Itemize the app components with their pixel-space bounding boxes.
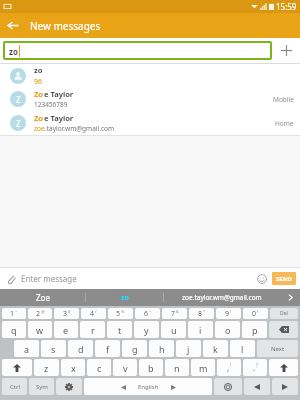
button[interactable]: 3: [54, 308, 79, 319]
button[interactable]: t: [107, 321, 132, 338]
button[interactable]: z: [34, 359, 59, 376]
button[interactable]: Back: [0, 13, 25, 38]
button[interactable]: Ctrl: [2, 378, 27, 395]
staticText: ,: [227, 362, 230, 373]
button[interactable]: 9: [216, 308, 241, 319]
button[interactable]: m: [191, 359, 215, 376]
staticText: Next: [271, 345, 285, 353]
button[interactable]: i: [188, 321, 213, 338]
button[interactable]: SEND: [272, 272, 296, 285]
button[interactable]: g: [122, 340, 147, 357]
staticText: %: [121, 309, 125, 314]
button[interactable]: o: [215, 321, 240, 338]
staticText: 8: [198, 309, 203, 319]
button[interactable]: n: [165, 359, 189, 376]
button[interactable]: Settings: [56, 378, 82, 395]
button[interactable]: f: [95, 340, 120, 357]
staticText: ^: [149, 309, 152, 314]
button[interactable]: Add recipient: [272, 38, 300, 63]
staticText: u: [171, 324, 177, 336]
button[interactable]: Shift: [269, 359, 298, 376]
button[interactable]: e: [54, 321, 78, 338]
button[interactable]: English: [84, 378, 212, 395]
staticText: 15:59: [276, 1, 297, 12]
button[interactable]: Sym: [29, 378, 54, 395]
button[interactable]: h: [149, 340, 174, 357]
button[interactable]: q: [2, 321, 26, 338]
button[interactable]: y: [134, 321, 159, 338]
staticText: ~: [15, 309, 18, 314]
button[interactable]: x: [61, 359, 85, 376]
button[interactable]: 7: [162, 308, 187, 319]
button[interactable]: Z: [0, 87, 300, 111]
button[interactable]: a: [14, 340, 39, 357]
button[interactable]: Left: [244, 378, 270, 395]
staticText: 2: [36, 309, 41, 319]
staticText: i: [199, 324, 202, 336]
staticText: .: [253, 362, 256, 373]
button[interactable]: r: [80, 321, 105, 338]
button[interactable]: k: [203, 340, 228, 357]
button[interactable]: u: [161, 321, 186, 338]
button[interactable]: 8: [189, 308, 214, 319]
button[interactable]: Z: [0, 111, 300, 135]
staticText: 4: [90, 309, 95, 319]
button[interactable]: w: [28, 321, 52, 338]
staticText: o: [225, 324, 231, 336]
staticText: p: [252, 324, 258, 336]
button[interactable]: 2: [28, 308, 52, 319]
button[interactable]: 1: [2, 308, 26, 319]
staticText: z: [44, 362, 49, 374]
button[interactable]: 5: [108, 308, 133, 319]
staticText: ?: [256, 362, 258, 368]
staticText: Zo: [34, 89, 44, 99]
button[interactable]: Zoe: [0, 289, 85, 306]
button[interactable]: zo: [0, 64, 300, 87]
button[interactable]: 6: [135, 308, 160, 319]
staticText: *: [203, 309, 206, 314]
button[interactable]: Attach: [0, 268, 21, 289]
staticText: Enter message: [21, 273, 77, 284]
button[interactable]: p: [242, 321, 267, 338]
staticText: w: [36, 324, 44, 336]
button[interactable]: More suggestions: [280, 289, 300, 306]
staticText: d: [78, 343, 84, 355]
button[interactable]: l: [230, 340, 255, 357]
button[interactable]: Del: [270, 308, 298, 319]
button[interactable]: Emoji: [251, 268, 272, 289]
staticText: y: [144, 324, 149, 336]
staticText: t: [118, 324, 122, 336]
button[interactable]: Backspace: [269, 321, 298, 338]
button[interactable]: d: [68, 340, 93, 357]
staticText: zoe.taylor.wm@gmail.com: [182, 293, 262, 302]
button[interactable]: c: [87, 359, 111, 376]
staticText: Home: [275, 119, 294, 128]
button[interactable]: zoe.taylor.wm@gmail.com: [164, 289, 280, 306]
staticText: Zoe: [36, 292, 50, 303]
button[interactable]: j: [176, 340, 201, 357]
button[interactable]: v: [113, 359, 137, 376]
staticText: ): [257, 309, 259, 314]
staticText: Zo: [34, 113, 44, 123]
staticText: n: [174, 362, 180, 374]
button[interactable]: zo: [86, 289, 163, 306]
button[interactable]: zo: [3, 41, 272, 60]
button[interactable]: 0: [243, 308, 268, 319]
staticText: 3: [63, 309, 68, 319]
button[interactable]: Next: [257, 340, 298, 357]
button[interactable]: b: [139, 359, 163, 376]
button[interactable]: Right: [272, 378, 298, 395]
staticText: .taylor.wm@gmail.com: [45, 124, 115, 133]
staticText: x: [71, 362, 76, 374]
staticText: English: [138, 383, 159, 391]
staticText: Z: [16, 94, 21, 105]
button[interactable]: s: [41, 340, 66, 357]
staticText: zo: [34, 65, 43, 75]
button[interactable]: 4: [81, 308, 106, 319]
staticText: #: [68, 309, 71, 314]
button[interactable]: Shift: [2, 359, 32, 376]
staticText: /: [95, 309, 97, 314]
button[interactable]: ,: [217, 359, 241, 376]
button[interactable]: Voice input: [214, 378, 242, 395]
button[interactable]: .: [243, 359, 267, 376]
